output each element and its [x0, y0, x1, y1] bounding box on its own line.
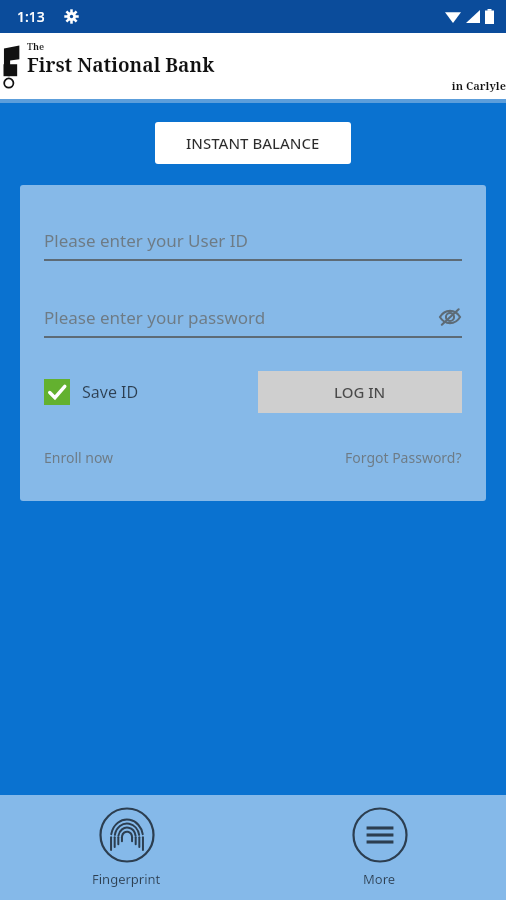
staticText: Save ID	[82, 381, 139, 403]
other: Show password	[438, 305, 462, 329]
staticText: in Carlyle	[27, 78, 506, 93]
button[interactable]: Please enter your User ID	[44, 229, 462, 261]
staticText: The	[27, 40, 45, 52]
button[interactable]: More	[253, 807, 506, 888]
button[interactable]: Fingerprint	[0, 807, 253, 888]
button[interactable]: Forgot Password?	[345, 448, 462, 467]
button[interactable]: Please enter your password	[44, 305, 462, 338]
button[interactable]: LOG IN	[258, 371, 462, 413]
button[interactable]: INSTANT BALANCE	[155, 122, 351, 164]
staticText: More	[363, 870, 396, 888]
button[interactable]: Save ID	[44, 379, 139, 405]
staticText: Please enter your password	[44, 306, 266, 329]
staticText: First National Bank	[27, 52, 215, 78]
staticText: 1:13	[17, 7, 45, 26]
staticText: Fingerprint	[92, 870, 161, 888]
staticText: Please enter your User ID	[44, 229, 248, 252]
staticText: INSTANT BALANCE	[186, 133, 320, 153]
staticText: LOG IN	[334, 382, 386, 402]
button[interactable]: Enroll now	[44, 448, 114, 467]
